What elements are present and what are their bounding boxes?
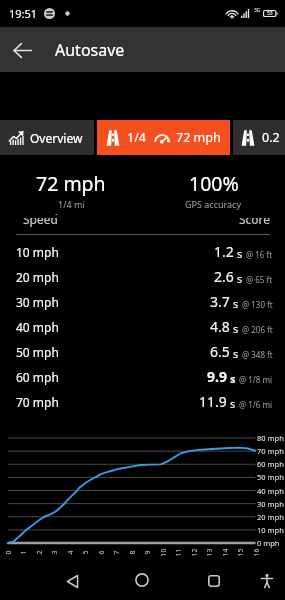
staticText: @ 206 ft: [242, 324, 273, 335]
button[interactable]: 10 mph: [0, 239, 285, 264]
button[interactable]: Overview: [0, 120, 94, 155]
staticText: 9: [142, 549, 152, 554]
staticText: @ 1/6 mi: [239, 399, 273, 410]
staticText: 0.2: [262, 129, 280, 146]
button[interactable]: 70 mph: [0, 389, 285, 414]
staticText: 1/4: [127, 129, 146, 146]
staticText: 72 mph: [176, 129, 221, 146]
staticText: Speed: [23, 211, 58, 227]
staticText: 6: [96, 549, 106, 554]
button[interactable]: Accessibility: [250, 564, 284, 598]
staticText: 50 mph: [257, 472, 284, 482]
staticText: 7: [111, 549, 121, 554]
staticText: 9.9: [207, 367, 227, 386]
staticText: s: [230, 396, 236, 411]
staticText: 30 mph: [257, 499, 284, 509]
staticText: 13: [204, 547, 214, 556]
staticText: 10 mph: [257, 525, 284, 535]
staticText: 6.5: [210, 342, 230, 361]
staticText: s: [237, 271, 243, 286]
staticText: 4: [65, 549, 75, 554]
staticText: Overview: [30, 130, 83, 146]
staticText: s: [233, 321, 239, 336]
button[interactable]: Back: [0, 28, 44, 72]
staticText: @ 1/8 mi: [239, 374, 273, 385]
staticText: 11.9: [199, 392, 227, 411]
staticText: 2: [34, 549, 44, 554]
button[interactable]: 20 mph: [0, 264, 285, 289]
button[interactable]: Recent apps: [197, 564, 231, 598]
staticText: 16: [251, 547, 261, 556]
staticText: GPS accuracy: [185, 198, 242, 210]
staticText: 72 mph: [36, 170, 106, 197]
staticText: s: [233, 296, 239, 311]
staticText: 60 mph: [16, 369, 59, 385]
staticText: 30 mph: [16, 294, 59, 310]
staticText: 53: [267, 10, 273, 17]
staticText: 11: [173, 547, 183, 556]
staticText: 14: [220, 547, 230, 556]
staticText: 2.6: [214, 267, 234, 286]
staticText: 1/4 mi: [58, 198, 85, 210]
button[interactable]: 0.2: [233, 120, 285, 155]
staticText: 100%: [189, 170, 239, 197]
staticText: s: [233, 346, 239, 361]
staticText: 12: [189, 547, 199, 556]
staticText: 0 mph: [257, 538, 280, 548]
staticText: @ 348 ft: [242, 349, 273, 360]
staticText: Autosave: [55, 39, 125, 61]
staticText: 0: [3, 549, 13, 554]
staticText: @ 130 ft: [242, 299, 273, 310]
staticText: 50 mph: [16, 344, 59, 360]
staticText: 3: [49, 549, 59, 554]
staticText: 40 mph: [16, 319, 59, 335]
button[interactable]: 30 mph: [0, 289, 285, 314]
staticText: 3G: [254, 7, 261, 14]
staticText: 19:51: [9, 6, 38, 21]
staticText: s: [237, 246, 243, 261]
button[interactable]: 60 mph: [0, 364, 285, 389]
staticText: 60 mph: [257, 459, 284, 469]
staticText: 8: [127, 549, 137, 554]
staticText: 15: [235, 547, 245, 556]
staticText: Score: [239, 211, 271, 227]
button[interactable]: 50 mph: [0, 339, 285, 364]
button[interactable]: Home: [125, 563, 159, 597]
staticText: 20 mph: [16, 269, 59, 285]
staticText: s: [230, 371, 236, 386]
staticText: 20 mph: [257, 512, 284, 522]
button[interactable]: 1/4: [97, 120, 230, 155]
staticText: 3.7: [210, 292, 230, 311]
staticText: 80 mph: [257, 433, 284, 443]
staticText: 70 mph: [16, 394, 59, 410]
staticText: 4.8: [210, 317, 230, 336]
button[interactable]: Back: [55, 564, 89, 598]
button[interactable]: 40 mph: [0, 314, 285, 339]
staticText: 10 mph: [16, 244, 59, 260]
staticText: @ 16 ft: [246, 249, 273, 260]
staticText: 1.2: [214, 242, 234, 261]
staticText: @ 65 ft: [246, 274, 273, 285]
staticText: 1: [18, 549, 28, 554]
staticText: 70 mph: [257, 446, 284, 456]
staticText: 10: [158, 547, 168, 556]
staticText: 40 mph: [257, 486, 284, 496]
staticText: 5: [80, 549, 90, 554]
